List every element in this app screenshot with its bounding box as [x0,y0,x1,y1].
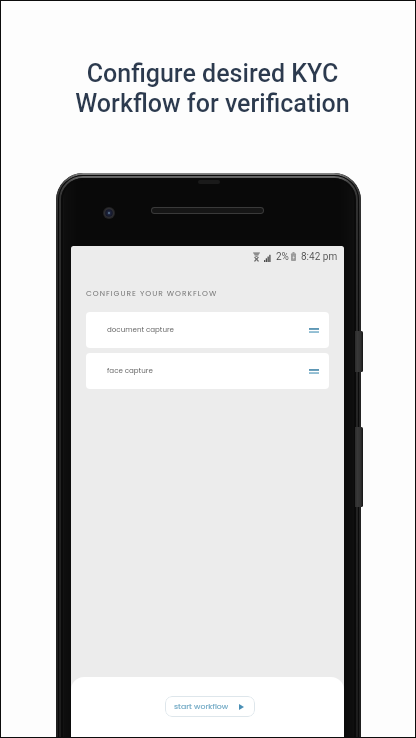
button[interactable]: document capture [86,312,329,348]
staticText: 2% [276,251,289,263]
staticText: Configure desired KYC Workflow for verif… [75,59,350,118]
staticText: face capture [107,366,153,376]
other: Reorder face capture [309,369,319,374]
staticText: start workflow [174,701,229,712]
staticText: document capture [107,325,174,335]
button[interactable]: start workflow [165,696,255,717]
other: Reorder document capture [309,328,319,333]
staticText: 8:42 pm [301,251,338,263]
staticText: CONFIGURE YOUR WORKFLOW [86,288,218,298]
button[interactable]: face capture [86,353,329,389]
